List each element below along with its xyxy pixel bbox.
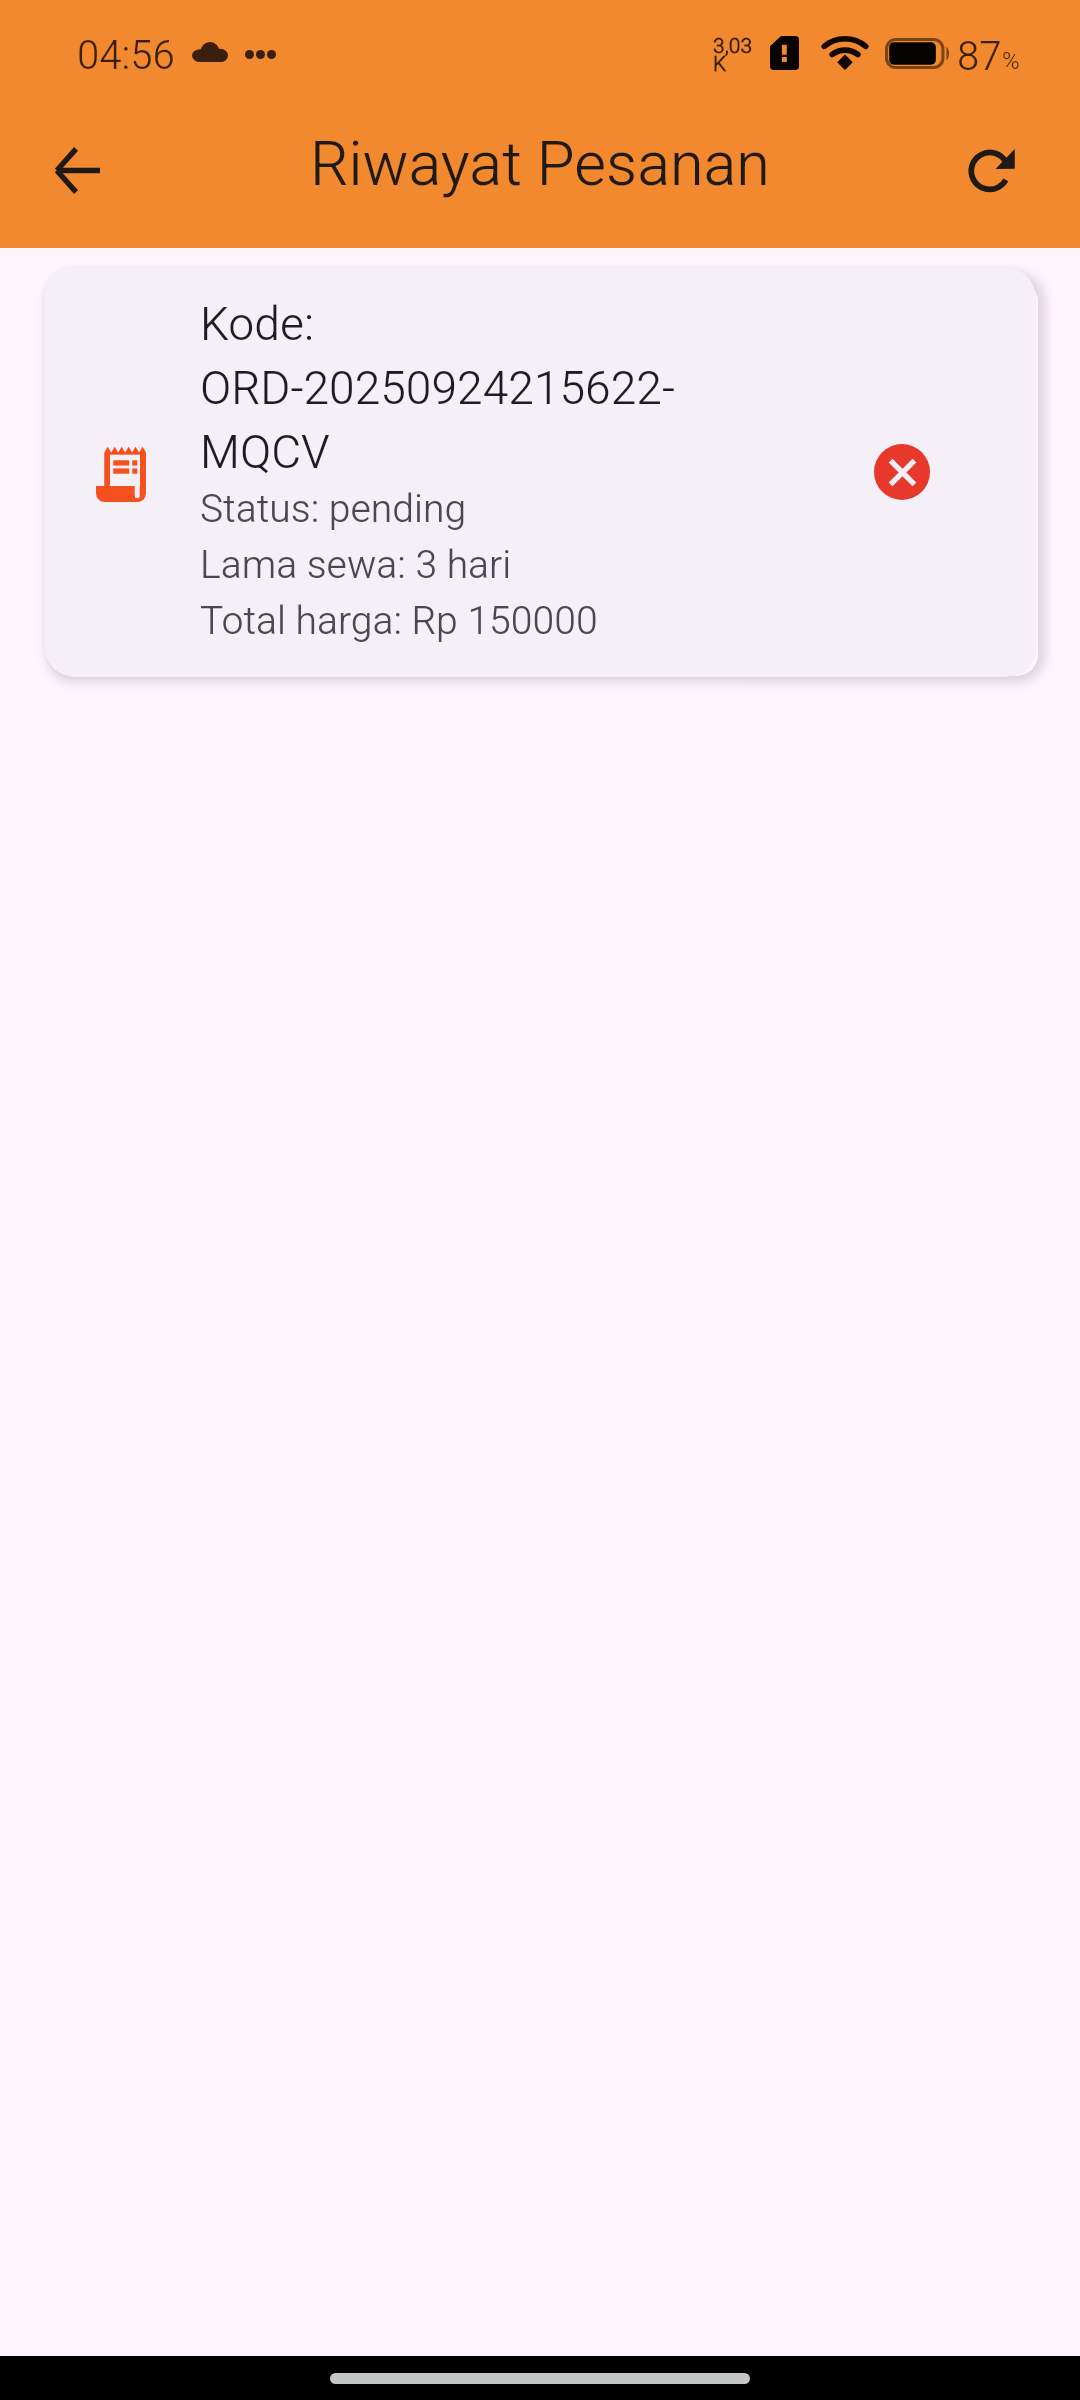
button[interactable]: Kode: ORD-20250924215622-MQCV bbox=[44, 267, 1036, 677]
button[interactable]: Cancel order bbox=[874, 444, 930, 500]
staticText: Riwayat Pesanan bbox=[310, 128, 770, 199]
staticText: % bbox=[1002, 49, 1020, 74]
staticText: Kode: ORD-20250924215622-MQCV bbox=[200, 289, 760, 481]
staticText: K bbox=[713, 54, 727, 76]
staticText: 87 bbox=[957, 37, 1002, 79]
staticText: 04:56 bbox=[77, 36, 175, 78]
staticText: Status: pending Lama sewa: 3 hari Total … bbox=[200, 478, 598, 646]
staticText: 3,03 bbox=[713, 36, 753, 58]
button[interactable]: Back bbox=[22, 115, 132, 225]
button[interactable]: Refresh bbox=[937, 115, 1047, 225]
